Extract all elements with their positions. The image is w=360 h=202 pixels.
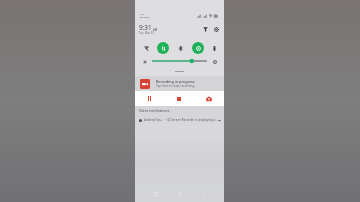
button[interactable]: Home (175, 189, 185, 199)
button[interactable]: Quick setting (192, 42, 204, 54)
button[interactable]: Pause recording (135, 91, 164, 106)
button[interactable]: Edit tiles (201, 25, 210, 34)
staticText: Silent notifications (139, 108, 170, 113)
button[interactable]: Quick setting (157, 42, 169, 54)
staticText: Tap here to stop recording (156, 84, 195, 88)
button[interactable]: Quick setting (208, 42, 220, 54)
staticText: 9:31 (139, 23, 152, 32)
button[interactable]: Android Sys… • XZ Screen Recorder is dis… (139, 118, 221, 122)
button[interactable]: Quick setting (174, 42, 186, 54)
staticText: XZ S (140, 13, 145, 16)
button[interactable]: Quick setting (140, 42, 152, 54)
button[interactable]: Recording in progress (135, 76, 224, 91)
button[interactable]: Recents (151, 189, 161, 199)
staticText: Android Sys… • XZ Screen Recorder is dis… (144, 118, 218, 122)
button[interactable]: Settings (212, 25, 221, 34)
staticText: Recording in progress (156, 79, 195, 84)
staticText: Recorder (140, 16, 150, 19)
staticText: Tue, Mar 23 (139, 31, 154, 35)
button[interactable]: Take screenshot (194, 91, 224, 106)
button[interactable]: Stop recording (164, 91, 194, 106)
staticText: AM (153, 28, 158, 32)
